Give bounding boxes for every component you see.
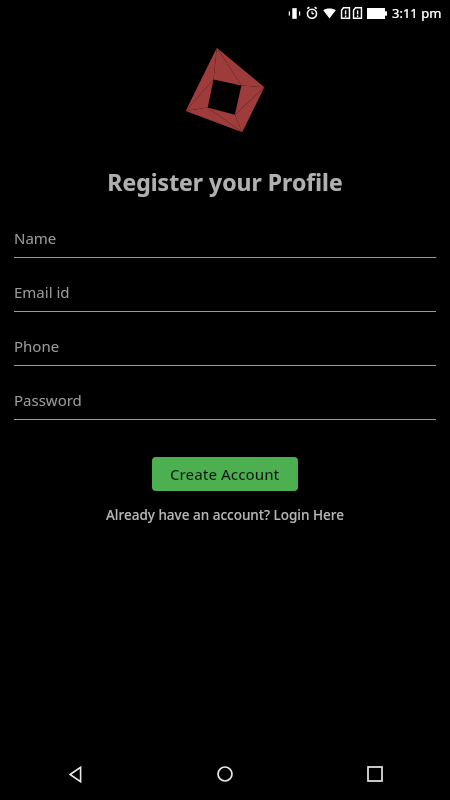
staticText: Name: [14, 228, 57, 248]
staticText: 3:11 pm: [392, 4, 442, 22]
staticText: Phone: [14, 336, 60, 356]
button[interactable]: Already have an account? Login Here: [106, 506, 345, 524]
button[interactable]: Create Account: [152, 457, 298, 491]
other: App logo: [184, 46, 266, 134]
button[interactable]: Email id: [14, 272, 436, 326]
button[interactable]: Home: [150, 748, 300, 800]
staticText: Password: [14, 390, 82, 410]
staticText: Already have an account? Login Here: [106, 506, 345, 524]
staticText: Register your Profile: [107, 166, 343, 197]
button[interactable]: Phone: [14, 326, 436, 380]
button[interactable]: Password: [14, 380, 436, 434]
staticText: Create Account: [170, 464, 280, 484]
button[interactable]: Back: [0, 748, 150, 800]
button[interactable]: Name: [14, 218, 436, 272]
staticText: Email id: [14, 282, 70, 302]
button[interactable]: Recent apps: [300, 748, 450, 800]
